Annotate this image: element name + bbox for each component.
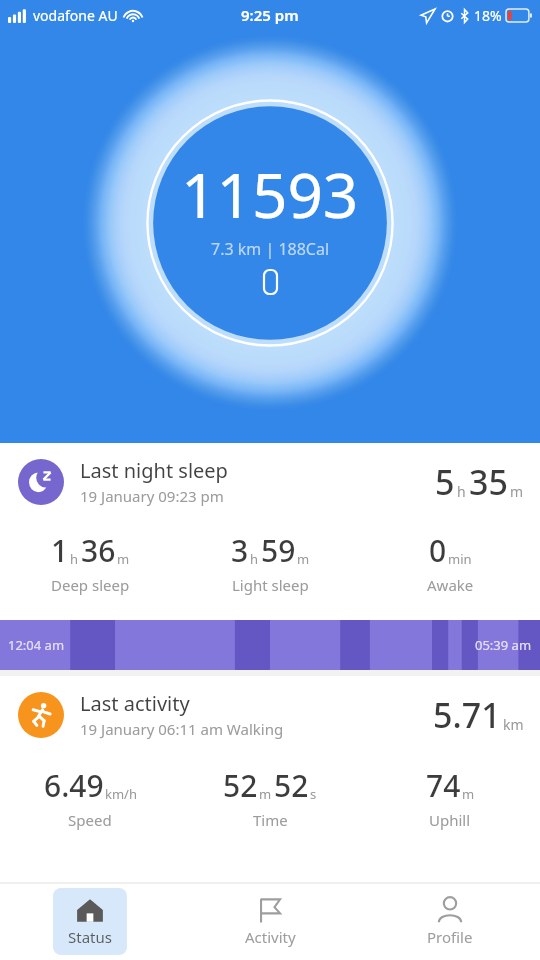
staticText: Profile: [427, 927, 473, 947]
staticText: 35: [469, 459, 508, 505]
staticText: m: [462, 785, 475, 803]
button[interactable]: Activity: [233, 888, 307, 955]
staticText: 12:04 am: [8, 636, 65, 654]
staticText: Activity: [245, 927, 296, 947]
staticText: m: [117, 550, 130, 568]
button[interactable]: 0: [360, 528, 540, 597]
staticText: h: [70, 550, 79, 568]
button[interactable]: 52: [180, 763, 360, 832]
staticText: 11593: [181, 152, 359, 236]
button[interactable]: 1: [0, 528, 180, 597]
staticText: Time: [253, 810, 288, 830]
staticText: Last activity: [80, 690, 190, 717]
other: Sleep icon: [18, 459, 64, 505]
staticText: Deep sleep: [51, 575, 130, 595]
staticText: 05:39 am: [475, 636, 532, 654]
button[interactable]: Sleep icon: [0, 457, 540, 506]
staticText: h: [457, 482, 466, 501]
button[interactable]: 3: [180, 528, 360, 597]
staticText: km: [503, 715, 524, 734]
staticText: 36: [81, 530, 116, 571]
staticText: 5: [435, 459, 455, 505]
staticText: 5.71: [433, 692, 501, 738]
button[interactable]: 6.49: [0, 763, 180, 832]
button[interactable]: Status: [53, 888, 127, 955]
staticText: Light sleep: [232, 575, 309, 595]
staticText: s: [310, 785, 317, 803]
staticText: Status: [68, 927, 112, 947]
staticText: m: [297, 550, 310, 568]
staticText: Speed: [68, 810, 112, 830]
staticText: 18%: [474, 6, 502, 25]
staticText: 52: [223, 765, 258, 806]
button[interactable]: Profile: [413, 888, 487, 955]
other: Profile: [436, 896, 464, 924]
staticText: Last night sleep: [80, 457, 228, 484]
button[interactable]: 74: [360, 763, 540, 832]
staticText: 7.3 km | 188Cal: [211, 238, 330, 260]
staticText: Awake: [427, 575, 474, 595]
other: Status: [76, 896, 104, 924]
staticText: 3: [231, 530, 249, 571]
staticText: km/h: [105, 785, 137, 803]
staticText: min: [448, 550, 472, 568]
staticText: 52: [274, 765, 309, 806]
staticText: 19 January 09:23 pm: [80, 486, 224, 506]
staticText: vodafone AU: [33, 6, 118, 25]
staticText: 0: [429, 530, 447, 571]
staticText: h: [250, 550, 259, 568]
staticText: Uphill: [429, 810, 471, 830]
staticText: 19 January 06:11 am Walking: [80, 719, 284, 739]
staticText: m: [510, 482, 524, 501]
staticText: m: [259, 785, 272, 803]
button[interactable]: Activity icon: [0, 690, 540, 739]
staticText: 59: [261, 530, 296, 571]
staticText: 74: [426, 765, 461, 806]
staticText: 6.49: [44, 765, 104, 806]
staticText: 9:25 pm: [241, 5, 299, 25]
staticText: 1: [51, 530, 69, 571]
other: Activity: [256, 896, 284, 924]
other: Activity icon: [18, 692, 64, 738]
